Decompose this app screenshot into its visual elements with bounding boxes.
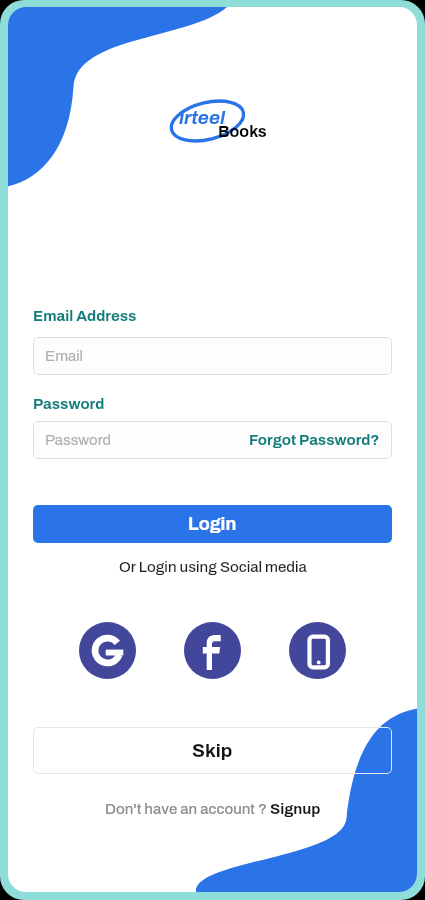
button[interactable]: Signup xyxy=(270,801,321,817)
button[interactable]: Forgot Password? xyxy=(249,432,380,448)
staticText: Password xyxy=(45,432,111,448)
staticText: Don't have an account ? xyxy=(105,801,270,817)
button[interactable]: Sign in with Google xyxy=(79,622,136,679)
button[interactable]: Login xyxy=(33,505,392,543)
staticText: Email xyxy=(45,348,83,364)
staticText: Books xyxy=(218,123,267,140)
staticText: Login xyxy=(188,514,237,534)
button[interactable]: Email xyxy=(33,337,392,375)
button[interactable]: Skip xyxy=(33,727,392,774)
staticText: irteel xyxy=(179,107,226,128)
button[interactable]: Password xyxy=(33,421,392,459)
button[interactable]: Sign in with phone number xyxy=(289,622,346,679)
staticText: Email Address xyxy=(33,308,137,324)
staticText: Or Login using Social media xyxy=(119,559,307,575)
button[interactable]: Sign in with Facebook xyxy=(184,622,241,679)
staticText: Skip xyxy=(192,740,233,761)
staticText: Password xyxy=(33,396,105,412)
